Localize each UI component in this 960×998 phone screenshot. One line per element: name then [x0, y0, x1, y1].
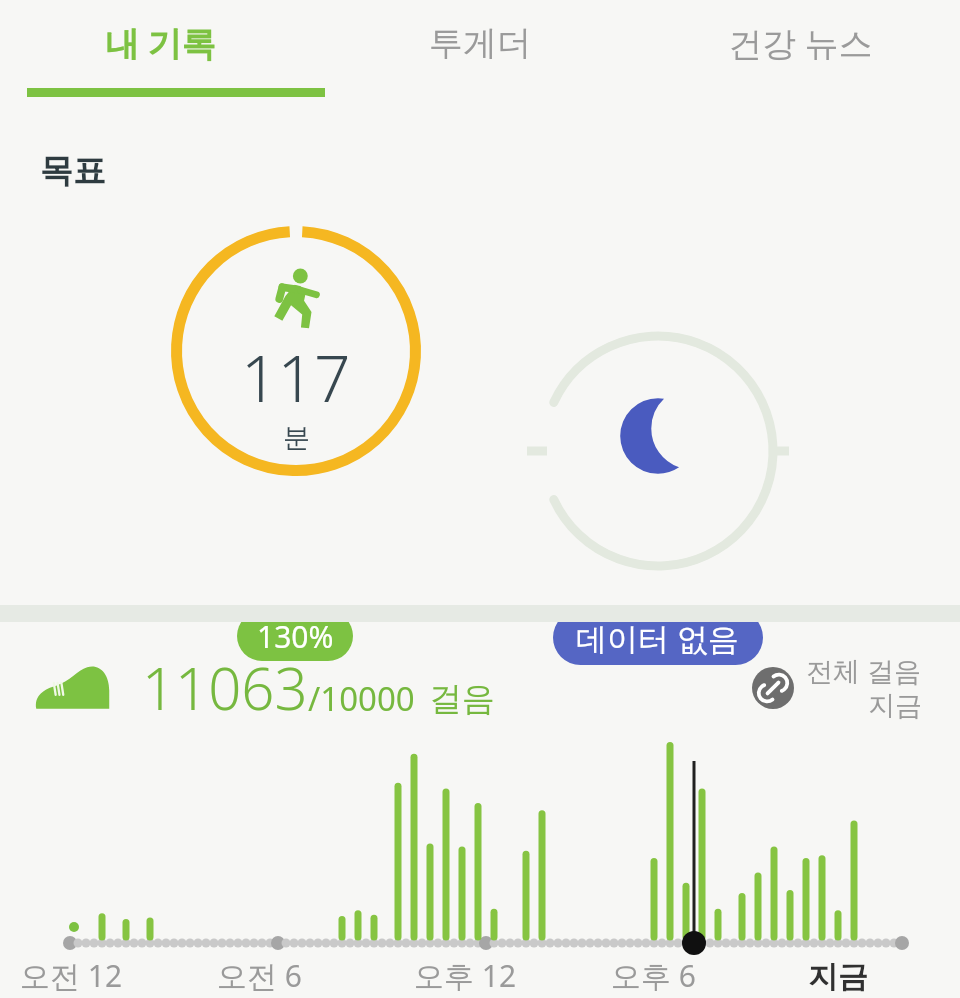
button[interactable]: Sleep: [524, 336, 792, 536]
staticText: 분: [283, 421, 310, 455]
other: Steps: [34, 662, 110, 714]
staticText: 걸음: [429, 678, 495, 720]
button[interactable]: 투게더: [320, 0, 640, 98]
button[interactable]: Exercise: [171, 226, 421, 476]
staticText: 지금: [808, 958, 868, 996]
staticText: 건강 뉴스: [728, 20, 873, 66]
other: Exercise: [265, 268, 327, 330]
staticText: 전체 걸음: [806, 652, 922, 689]
button[interactable]: 건강 뉴스: [640, 0, 960, 98]
staticText: 오후 6: [611, 955, 696, 996]
staticText: 오후 12: [414, 955, 517, 996]
staticText: 11063: [142, 648, 308, 727]
staticText: 오전 12: [20, 955, 123, 996]
staticText: 117: [241, 334, 351, 421]
staticText: 오전 6: [217, 955, 302, 996]
staticText: 지금: [868, 689, 922, 723]
button[interactable]: 130%: [237, 611, 353, 661]
other: Sleep: [616, 394, 700, 478]
staticText: 목표: [40, 150, 106, 192]
staticText: /10000: [308, 676, 415, 721]
staticText: 데이터 없음: [576, 617, 740, 659]
staticText: 내 기록: [105, 20, 216, 66]
button[interactable]: 데이터 없음: [553, 610, 763, 665]
button[interactable]: All steps: [752, 652, 922, 723]
button[interactable]: 내 기록: [0, 0, 320, 98]
staticText: 130%: [257, 616, 334, 657]
other: All steps: [752, 667, 794, 709]
staticText: 투게더: [429, 22, 531, 65]
